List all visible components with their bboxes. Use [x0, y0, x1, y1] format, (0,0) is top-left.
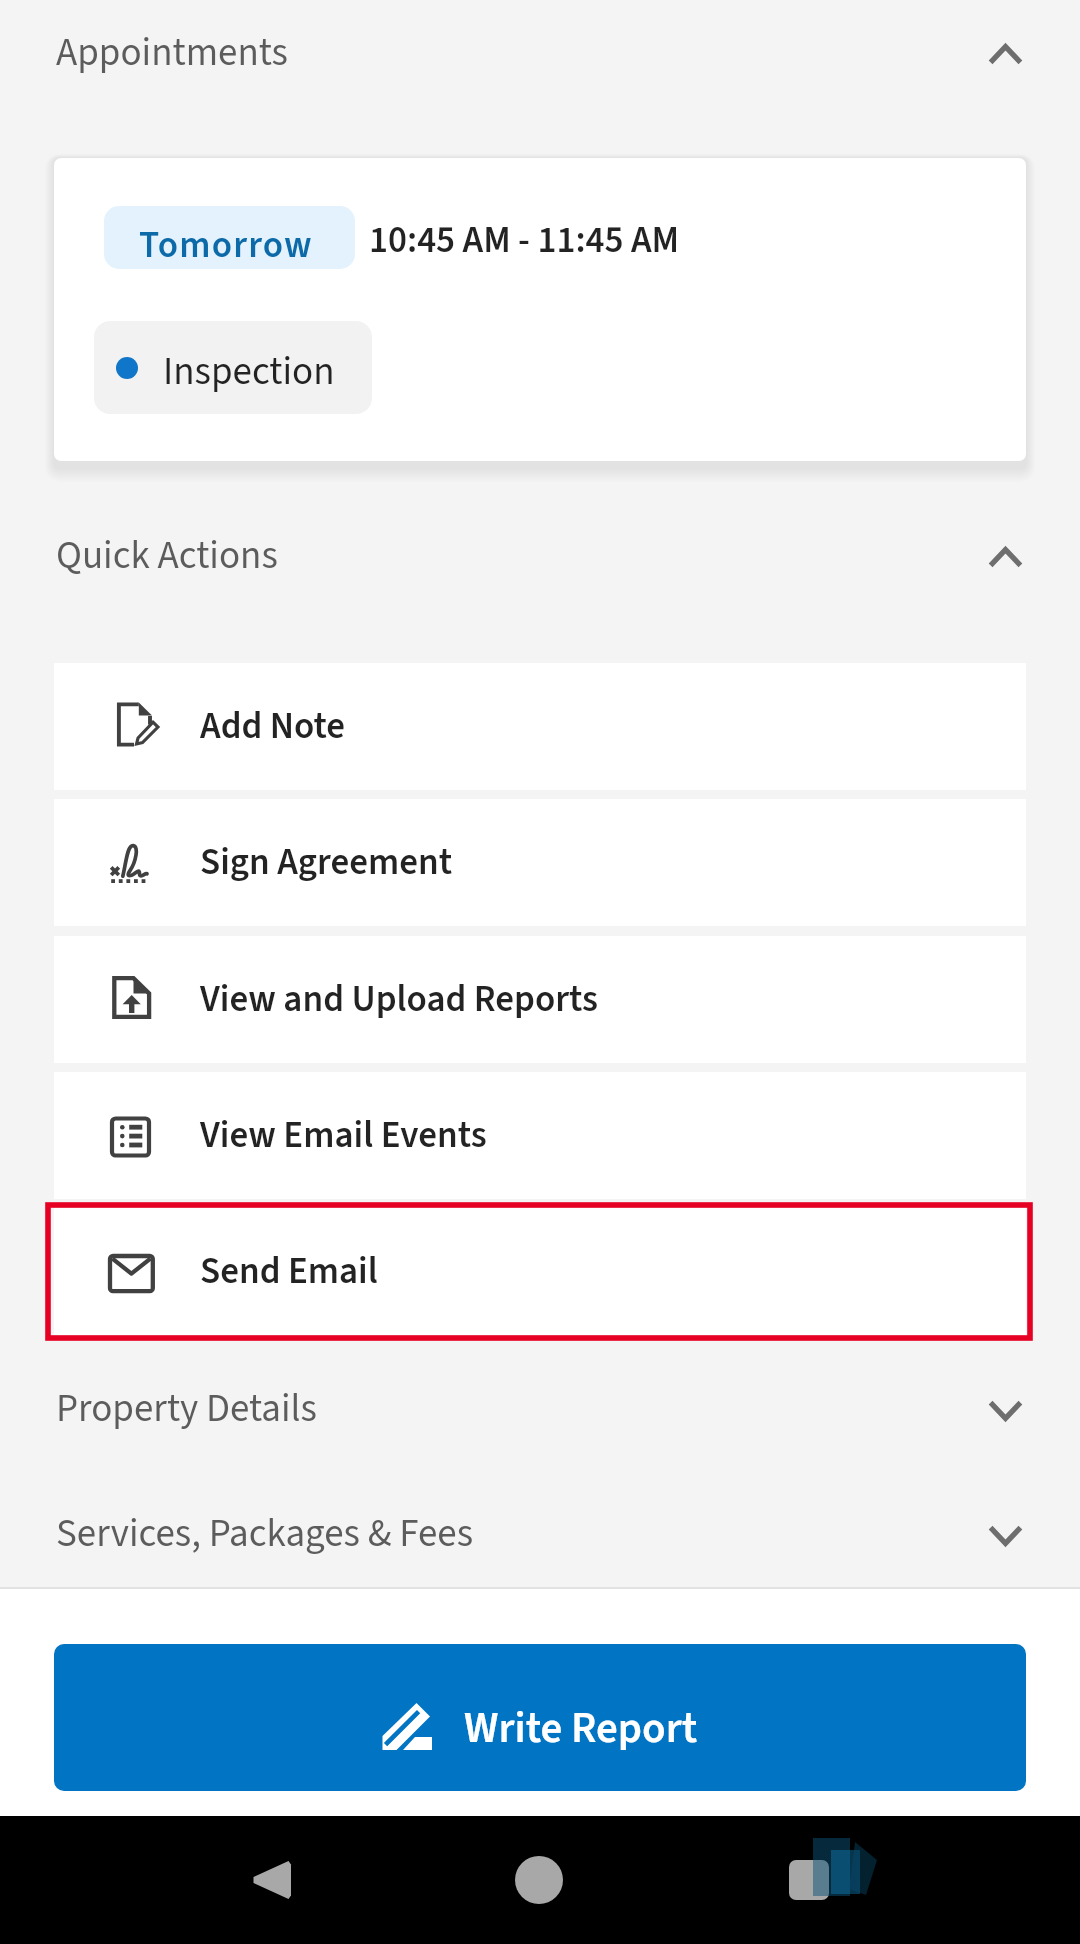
button[interactable]: Send Email — [54, 1208, 1026, 1335]
staticText: Property Details — [56, 1381, 317, 1437]
staticText: View and Upload Reports — [200, 973, 598, 1026]
button[interactable]: Property Details — [0, 1356, 1080, 1462]
button[interactable]: Back — [195, 1816, 345, 1944]
button[interactable]: Services, Packages & Fees — [0, 1481, 1080, 1587]
button[interactable]: View and Upload Reports — [54, 936, 1026, 1063]
staticText: Quick Actions — [56, 528, 278, 584]
staticText: Write Report — [464, 1698, 698, 1759]
button[interactable]: Add Note — [54, 663, 1026, 790]
staticText: Send Email — [200, 1245, 378, 1298]
staticText: Sign Agreement — [200, 836, 453, 889]
staticText: Inspection — [163, 344, 335, 400]
button[interactable]: Recent apps — [734, 1816, 884, 1944]
button[interactable]: Sign Agreement — [54, 799, 1026, 926]
button[interactable]: Appointments — [0, 0, 1080, 106]
staticText: Services, Packages & Fees — [56, 1506, 473, 1562]
button[interactable]: Home — [464, 1816, 614, 1944]
staticText: Tomorrow — [139, 219, 313, 269]
button[interactable]: View Email Events — [54, 1072, 1026, 1199]
staticText: Appointments — [56, 25, 288, 81]
staticText: Add Note — [200, 700, 346, 753]
button[interactable]: Tomorrow — [54, 158, 1026, 461]
button[interactable]: Quick Actions — [0, 503, 1080, 609]
staticText: View Email Events — [200, 1109, 487, 1162]
button[interactable]: Write Report — [54, 1644, 1026, 1791]
staticText: 10:45 AM - 11:45 AM — [369, 214, 680, 267]
